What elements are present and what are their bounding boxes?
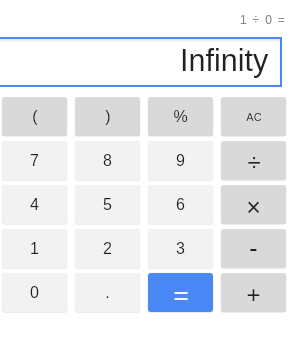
staticText: . [105, 284, 110, 302]
staticText: 9 [176, 152, 185, 170]
staticText: = [173, 280, 189, 309]
staticText: 7 [30, 152, 39, 170]
staticText: ( [32, 108, 38, 126]
button[interactable]: Seven [2, 141, 67, 180]
button[interactable]: Percent [148, 97, 213, 136]
staticText: % [173, 108, 188, 126]
button[interactable]: Plus [221, 273, 286, 312]
button[interactable]: Four [2, 185, 67, 224]
staticText: + [246, 281, 261, 308]
button[interactable]: Two [75, 229, 140, 268]
staticText: × [246, 193, 261, 221]
button[interactable]: Five [75, 185, 140, 224]
button[interactable]: One [2, 229, 67, 268]
button[interactable]: Close parenthesis [75, 97, 140, 136]
staticText: 2 [103, 240, 112, 258]
staticText: AC [246, 111, 262, 123]
button[interactable]: All clear [221, 97, 286, 136]
button[interactable]: Eight [75, 141, 140, 180]
button[interactable]: Equals [148, 273, 213, 312]
button[interactable]: Open parenthesis [2, 97, 67, 136]
staticText: 3 [176, 240, 185, 258]
button[interactable]: Multiply [221, 185, 286, 224]
staticText: ÷ [247, 149, 261, 176]
staticText: 1 ÷ 0 = [240, 13, 287, 26]
button[interactable]: Zero [2, 273, 67, 312]
staticText: 4 [30, 196, 39, 214]
staticText: ) [105, 108, 111, 126]
staticText: 5 [103, 196, 112, 214]
staticText: Infinity [180, 43, 269, 77]
button[interactable]: Nine [148, 141, 213, 180]
button[interactable]: Three [148, 229, 213, 268]
staticText: - [249, 234, 258, 262]
staticText: 0 [30, 284, 39, 302]
button[interactable]: Divide [221, 141, 286, 180]
staticText: 6 [176, 196, 185, 214]
staticText: 1 [30, 240, 39, 258]
button[interactable]: Decimal point [75, 273, 140, 312]
button[interactable]: Calculator display [0, 37, 284, 87]
button[interactable]: Six [148, 185, 213, 224]
button[interactable]: Minus [221, 229, 286, 268]
staticText: 8 [103, 152, 112, 170]
